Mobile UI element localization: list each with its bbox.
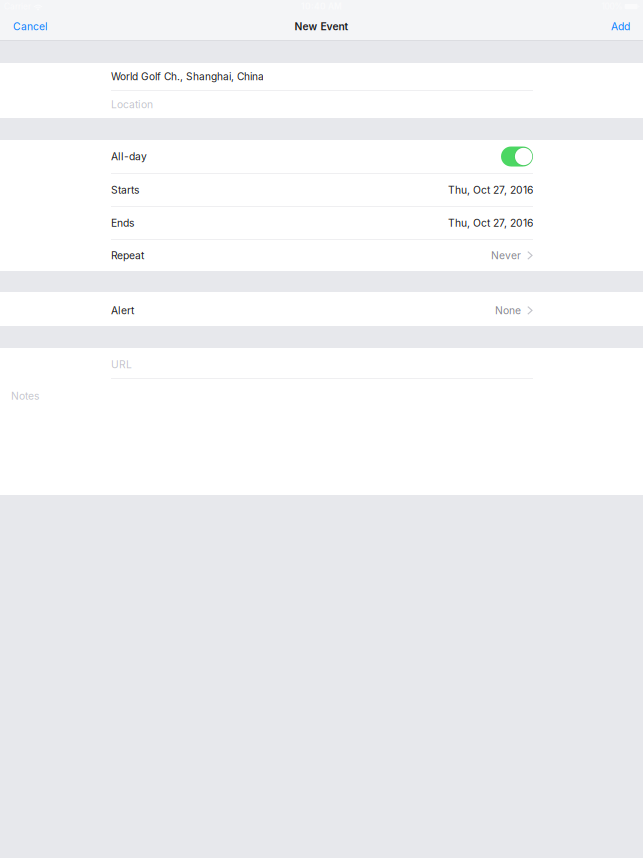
button[interactable]: Ends (0, 207, 643, 239)
button[interactable]: Cancel (13, 16, 48, 39)
button[interactable]: All-day (0, 140, 643, 173)
staticText: URL (111, 358, 132, 371)
staticText: Cancel (13, 20, 48, 33)
staticText: Thu, Oct 27, 2016 (448, 184, 533, 196)
staticText: World Golf Ch., Shanghai, China (111, 70, 264, 83)
staticText: Ends (111, 217, 134, 229)
staticText: Never (491, 249, 521, 262)
staticText: New Event (294, 20, 348, 33)
staticText: Thu, Oct 27, 2016 (448, 217, 533, 229)
staticText: All-day (111, 150, 147, 163)
button[interactable]: Add (611, 16, 630, 39)
staticText: Location (111, 98, 153, 111)
staticText: Repeat (111, 249, 144, 262)
button[interactable]: Location (0, 91, 643, 118)
button[interactable]: Starts (0, 174, 643, 206)
staticText: Starts (111, 184, 139, 196)
button[interactable]: World Golf Ch., Shanghai, China (0, 63, 643, 90)
button[interactable]: Alert (0, 292, 643, 326)
button[interactable]: Repeat (0, 240, 643, 271)
staticText: Alert (111, 304, 134, 317)
staticText: Notes (11, 390, 39, 402)
staticText: Add (611, 20, 630, 33)
staticText: None (495, 304, 521, 317)
